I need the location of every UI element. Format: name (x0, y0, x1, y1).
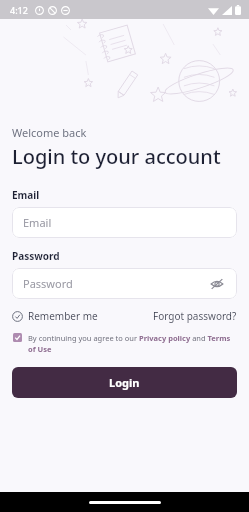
staticText: Password (23, 276, 73, 291)
staticText: Email (12, 188, 40, 202)
button[interactable]: By continuing you agree to our Privacy p… (12, 333, 237, 354)
staticText: Password (12, 249, 60, 263)
staticText: Forgot password? (153, 309, 237, 323)
button[interactable]: Remember me (12, 307, 98, 325)
staticText: Remember me (28, 309, 98, 323)
button[interactable]: Email (12, 207, 237, 238)
staticText: Welcome back (12, 125, 87, 140)
button[interactable]: Show password (208, 275, 226, 293)
staticText: Login to your account (12, 143, 221, 170)
staticText: Email (23, 215, 52, 230)
button[interactable]: Password (12, 268, 237, 299)
staticText: Login (109, 375, 140, 390)
staticText: By continuing you agree to our Privacy p… (28, 333, 237, 354)
staticText: 4:12 (10, 4, 28, 16)
button[interactable]: Forgot password? (153, 307, 237, 325)
button[interactable]: Login (12, 367, 237, 398)
